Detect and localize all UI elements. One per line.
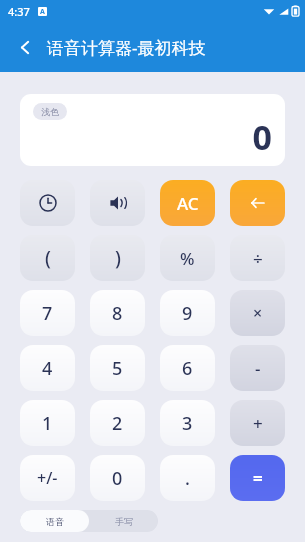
button[interactable]: 5 <box>90 345 145 391</box>
button[interactable]: ÷ <box>230 235 285 281</box>
staticText: 8 <box>112 301 123 326</box>
button[interactable]: AC <box>160 180 215 226</box>
button[interactable]: % <box>160 235 215 281</box>
button[interactable]: ( <box>20 235 75 281</box>
staticText: AC <box>177 192 199 215</box>
button[interactable]: Back <box>10 32 40 62</box>
staticText: +/- <box>37 467 58 489</box>
button[interactable]: × <box>230 290 285 336</box>
button[interactable]: 3 <box>160 400 215 446</box>
staticText: % <box>180 247 195 270</box>
staticText: 0 <box>112 466 123 491</box>
button[interactable]: 语音 <box>20 510 89 532</box>
staticText: 浅色 <box>41 106 59 117</box>
staticText: 4 <box>42 356 53 381</box>
staticText: 0 <box>252 114 272 160</box>
staticText: ) <box>115 245 121 271</box>
staticText: 1 <box>42 411 53 436</box>
button[interactable]: 手写 <box>89 510 158 532</box>
staticText: ÷ <box>253 247 263 270</box>
staticText: 语音 <box>46 516 64 527</box>
staticText: 3 <box>182 411 193 436</box>
staticText: ( <box>45 245 51 271</box>
button[interactable]: 0 <box>90 455 145 501</box>
staticText: 7 <box>42 301 53 326</box>
staticText: 语音计算器-最初科技 <box>47 36 206 59</box>
button[interactable]: 1 <box>20 400 75 446</box>
button[interactable]: 9 <box>160 290 215 336</box>
staticText: 手写 <box>115 516 133 527</box>
button[interactable]: Sound <box>90 180 145 226</box>
button[interactable]: Delete <box>230 180 285 226</box>
staticText: 4:37 <box>8 4 30 19</box>
button[interactable]: + <box>230 400 285 446</box>
button[interactable]: 4 <box>20 345 75 391</box>
staticText: 5 <box>112 356 123 381</box>
button[interactable]: 7 <box>20 290 75 336</box>
button[interactable]: History <box>20 180 75 226</box>
staticText: + <box>253 412 263 435</box>
button[interactable]: 6 <box>160 345 215 391</box>
button[interactable]: - <box>230 345 285 391</box>
button[interactable]: +/- <box>20 455 75 501</box>
staticText: A <box>40 7 45 16</box>
staticText: 2 <box>112 411 123 436</box>
button[interactable]: 2 <box>90 400 145 446</box>
staticText: 6 <box>182 356 193 381</box>
button[interactable]: 8 <box>90 290 145 336</box>
staticText: × <box>253 302 263 324</box>
button[interactable]: . <box>160 455 215 501</box>
staticText: . <box>185 466 190 491</box>
button[interactable]: ) <box>90 235 145 281</box>
button[interactable]: 浅色 <box>33 103 67 120</box>
staticText: = <box>253 467 263 490</box>
button[interactable]: = <box>230 455 285 501</box>
staticText: 9 <box>182 301 193 326</box>
staticText: - <box>255 357 261 380</box>
